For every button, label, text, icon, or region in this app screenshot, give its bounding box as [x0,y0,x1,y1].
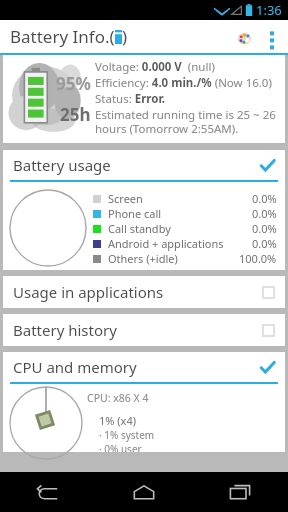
staticText: Battery history [13,320,117,340]
staticText: Battery usage [13,155,111,175]
staticText: 1% (x4) [99,413,137,428]
staticText: Others (+idle) [108,251,178,266]
staticText: 0.0% [252,191,277,206]
staticText: 100.0% [239,251,277,266]
button[interactable]: CPU and memory [3,352,285,452]
button[interactable]: Home [118,472,170,512]
staticText: Efficiency: 4.0 min./% (Now 16.0) [95,75,272,91]
staticText: 1:36 [256,1,282,19]
staticText: Status: Error. [95,91,165,107]
staticText: Battery Info.( [10,25,115,48]
button[interactable]: Recents [214,472,266,512]
button[interactable]: 95% [3,55,285,143]
staticText: 95% [56,72,91,95]
staticText: 25h [60,103,91,126]
staticText: · 0% user [99,442,142,452]
staticText: Call standby [108,221,171,236]
staticText: 0.0% [252,236,277,251]
staticText: Voltage: 0.000 V (null) [95,59,215,75]
staticText: 0.0% [252,206,277,221]
staticText: ) [122,25,128,48]
staticText: CPU and memory [13,357,137,377]
button[interactable]: Usage in applications [3,276,285,308]
staticText: Screen [108,191,143,206]
button[interactable]: Back [22,472,74,512]
staticText: Android + applications [108,236,224,251]
button[interactable]: Battery usage [3,150,285,270]
button[interactable]: Battery history [3,314,285,346]
staticText: Estimated running time is 25 ~ 26 hours … [95,107,281,136]
staticText: CPU: x86 X 4 [87,391,149,405]
staticText: Usage in applications [13,282,164,302]
staticText: Phone call [108,206,162,221]
staticText: 0.0% [252,221,277,236]
button[interactable]: More options [262,27,282,47]
staticText: · 1% system [99,428,155,442]
button[interactable]: Theme [232,25,256,49]
